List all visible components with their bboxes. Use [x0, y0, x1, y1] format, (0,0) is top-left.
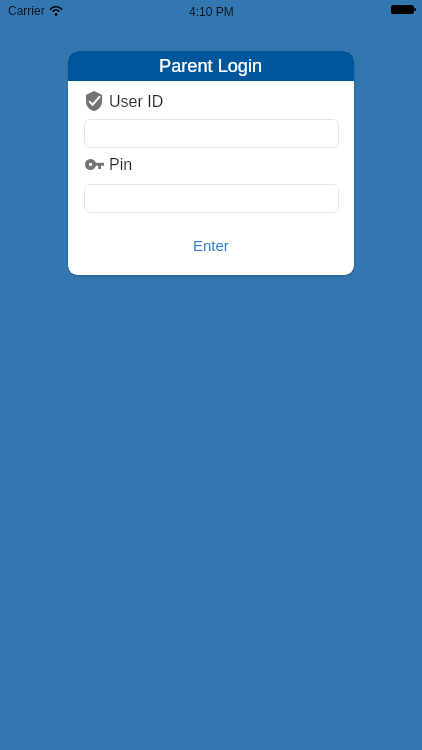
other: Wi-Fi signal: [49, 4, 63, 15]
other: Secure user: [86, 91, 102, 111]
button[interactable]: User ID input: [84, 119, 339, 148]
staticText: Enter: [193, 237, 229, 254]
other: Pin key: [85, 159, 104, 170]
staticText: 4:10 PM: [189, 5, 234, 18]
other: Battery full: [391, 5, 416, 14]
button[interactable]: Enter: [68, 228, 354, 262]
button[interactable]: Pin input: [84, 184, 339, 213]
staticText: User ID: [109, 93, 164, 111]
staticText: Pin: [109, 156, 133, 174]
staticText: Carrier: [8, 4, 45, 17]
staticText: Parent Login: [159, 56, 263, 76]
